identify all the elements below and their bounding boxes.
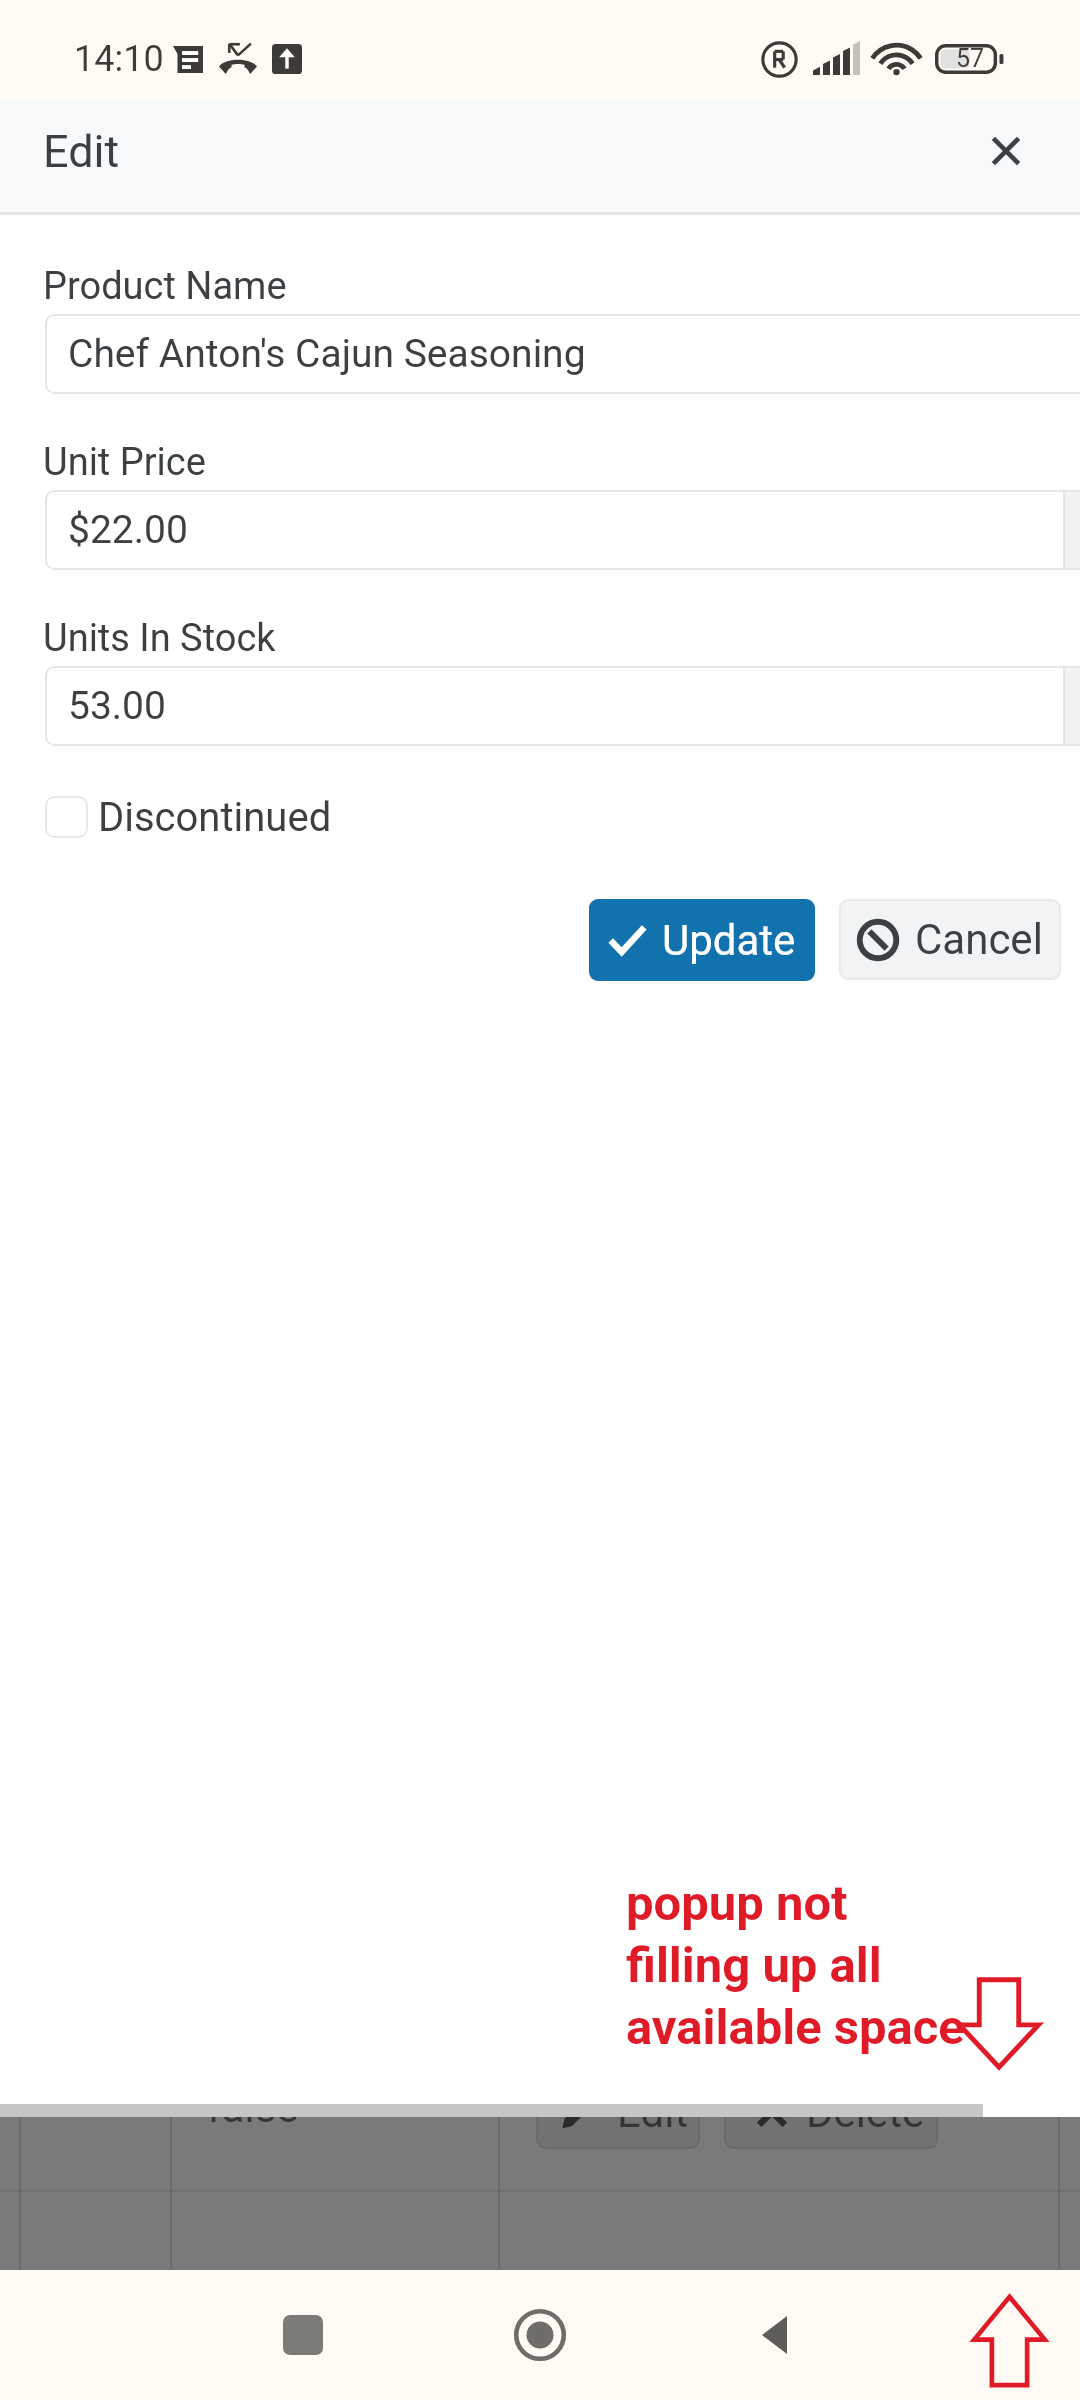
staticText: Edit [617,2117,689,2137]
button[interactable]: Unit Price [45,490,1080,570]
button[interactable]: Product Name [45,314,1080,394]
staticText: Update [662,916,796,965]
button[interactable]: Units In Stock [45,666,1080,746]
staticText: 57 [956,44,985,73]
button[interactable]: Update [589,899,815,981]
staticText: Edit [43,125,120,178]
staticText: Delete [806,2117,925,2137]
staticText: Unit Price [43,440,206,485]
staticText: Product Name [43,264,287,309]
staticText: Chef Anton's Cajun Seasoning [68,331,586,377]
button[interactable]: Discontinued [45,792,332,842]
staticText: popup not filling up all available space [626,1875,965,2056]
button[interactable]: Back [732,2290,822,2380]
staticText: Units In Stock [43,616,276,661]
button[interactable]: Recent apps [258,2290,348,2380]
staticText: 53.00 [68,683,166,729]
other: Navigation bar callout [972,2294,1047,2388]
staticText: 14:10 [74,38,164,80]
button[interactable]: Home [495,2290,585,2380]
staticText: Cancel [915,915,1043,964]
staticText: Discontinued [98,794,332,841]
staticText: false [207,2117,299,2132]
staticText: $22.00 [68,507,188,553]
button[interactable]: Cancel [839,899,1061,980]
button[interactable]: Close dialog [969,119,1043,193]
